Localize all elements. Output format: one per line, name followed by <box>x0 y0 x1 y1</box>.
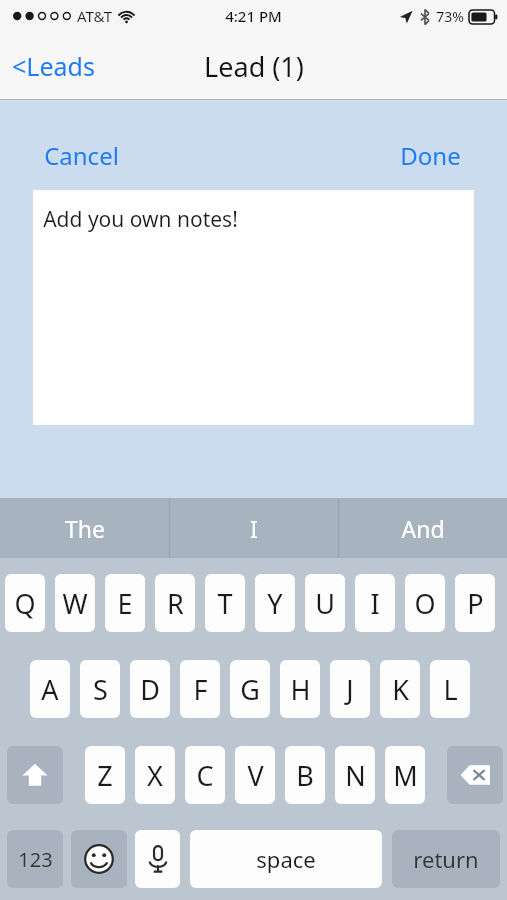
staticText: 123 <box>18 846 53 873</box>
button[interactable]: L <box>430 660 470 718</box>
button[interactable]: V <box>235 746 275 804</box>
button[interactable]: The <box>0 498 169 558</box>
staticText: Cancel <box>44 139 119 172</box>
button[interactable]: Z <box>85 746 125 804</box>
staticText: S <box>93 671 108 708</box>
staticText: G <box>240 671 260 708</box>
staticText: E <box>117 585 133 622</box>
button[interactable]: H <box>280 660 320 718</box>
button[interactable]: Emoji <box>71 830 127 888</box>
button[interactable]: A <box>30 660 70 718</box>
staticText: I <box>370 585 380 622</box>
staticText: M <box>393 757 418 794</box>
button[interactable]: I <box>355 574 395 632</box>
button[interactable]: Y <box>255 574 295 632</box>
staticText: A <box>41 671 59 708</box>
button[interactable]: Q <box>5 574 45 632</box>
button[interactable]: <Leads <box>0 41 107 91</box>
button[interactable]: K <box>380 660 420 718</box>
staticText: J <box>346 671 354 708</box>
staticText: D <box>140 671 160 708</box>
button[interactable]: I <box>170 498 338 558</box>
staticText: H <box>290 671 311 708</box>
staticText: 73% <box>436 7 464 26</box>
staticText: Done <box>400 139 461 172</box>
staticText: B <box>296 757 314 794</box>
staticText: K <box>392 671 409 708</box>
staticText: U <box>315 585 335 622</box>
staticText: Z <box>97 757 113 794</box>
staticText: F <box>193 671 208 708</box>
button[interactable]: S <box>80 660 120 718</box>
button[interactable]: X <box>135 746 175 804</box>
staticText: return <box>413 844 479 874</box>
staticText: O <box>414 585 436 622</box>
button[interactable]: Done <box>386 131 475 180</box>
button[interactable]: Add you own notes! <box>33 190 474 425</box>
button[interactable]: U <box>305 574 345 632</box>
button[interactable]: Cancel <box>30 131 133 180</box>
staticText: V <box>247 757 264 794</box>
button[interactable]: O <box>405 574 445 632</box>
button[interactable]: M <box>385 746 425 804</box>
staticText: X <box>147 757 163 794</box>
button[interactable]: T <box>205 574 245 632</box>
button[interactable]: D <box>130 660 170 718</box>
staticText: space <box>256 844 316 874</box>
button[interactable]: Dictation <box>135 830 180 888</box>
button[interactable]: R <box>155 574 195 632</box>
button[interactable]: B <box>285 746 325 804</box>
staticText: And <box>401 513 445 544</box>
button[interactable]: Backspace <box>447 746 503 804</box>
button[interactable]: J <box>330 660 370 718</box>
button[interactable]: F <box>180 660 220 718</box>
staticText: <Leads <box>12 49 95 83</box>
staticText: L <box>443 671 458 708</box>
staticText: The <box>65 513 105 544</box>
staticText: R <box>167 585 184 622</box>
button[interactable]: E <box>105 574 145 632</box>
staticText: 4:21 PM <box>225 6 282 26</box>
button[interactable]: N <box>335 746 375 804</box>
button[interactable]: G <box>230 660 270 718</box>
staticText: W <box>62 585 88 622</box>
staticText: Q <box>14 585 36 622</box>
button[interactable]: C <box>185 746 225 804</box>
staticText: Add you own notes! <box>43 205 238 234</box>
staticText: T <box>217 585 233 622</box>
staticText: Y <box>267 585 283 622</box>
staticText: P <box>467 585 484 622</box>
staticText: Lead (1) <box>204 48 304 85</box>
button[interactable]: return <box>392 830 500 888</box>
button[interactable]: 123 <box>7 830 63 888</box>
staticText: I <box>250 513 258 544</box>
staticText: AT&T <box>77 6 112 26</box>
button[interactable]: W <box>55 574 95 632</box>
button[interactable]: And <box>339 498 507 558</box>
staticText: C <box>196 757 214 794</box>
button[interactable]: P <box>455 574 495 632</box>
button[interactable]: Shift <box>7 746 63 804</box>
button[interactable]: space <box>190 830 382 888</box>
staticText: N <box>345 757 366 794</box>
